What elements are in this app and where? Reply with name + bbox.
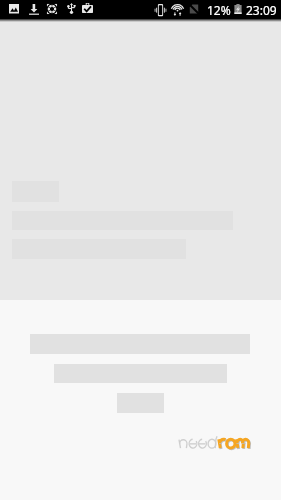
button[interactable]: needrom home — [179, 434, 253, 450]
staticText: 23:09 — [246, 2, 277, 18]
staticText: 12% — [207, 2, 231, 18]
